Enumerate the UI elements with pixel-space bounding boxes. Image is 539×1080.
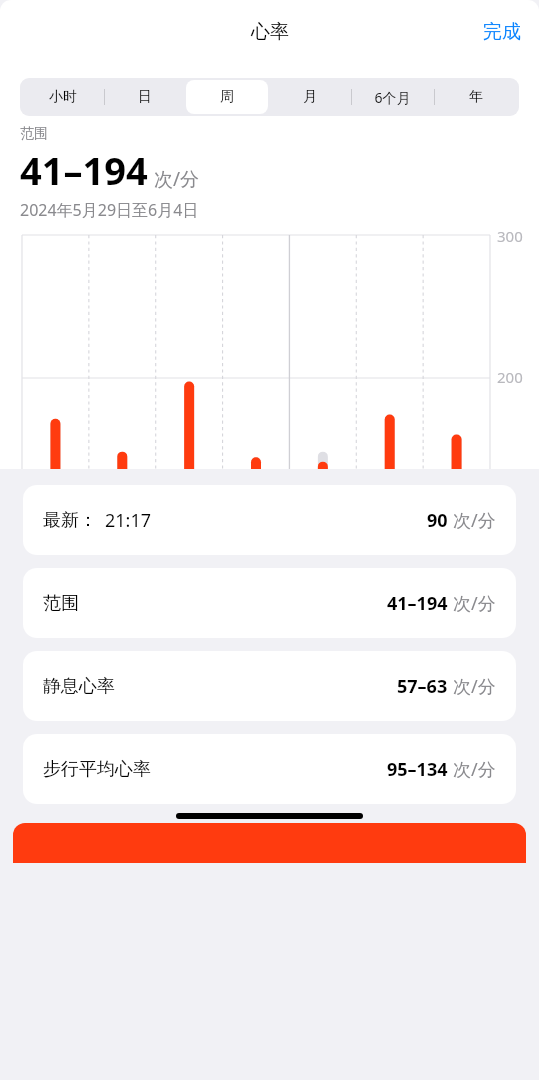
staticText: 静息心率 [43,675,115,698]
staticText: 100 [497,508,523,528]
button[interactable]: 6个月 [351,80,434,114]
staticText: 周二 [442,669,472,688]
staticText: 90 [427,508,448,533]
staticText: 300 [497,226,523,246]
button[interactable]: 范围 [23,568,516,638]
staticText: 小时 [49,88,77,106]
staticText: 次/分 [453,757,496,782]
button[interactable]: 月 [268,80,351,114]
staticText: 次/分 [453,674,496,699]
staticText: 范围 [20,125,48,143]
staticText: 200 [497,367,523,387]
button[interactable]: 年 [434,80,517,114]
staticText: 21:17 [105,508,152,533]
staticText: 年 [469,88,483,106]
button[interactable]: 小时 [22,80,104,114]
button[interactable]: 日 [104,80,186,114]
staticText: 日 [138,88,152,106]
staticText: 心率 [251,20,289,44]
button[interactable]: 完成 [465,10,539,54]
staticText: 周四 [107,669,137,688]
staticText: 月 [303,88,317,106]
staticText: 次/分 [154,166,200,192]
staticText: 2024年5月29日至6月4日 [20,199,199,221]
staticText: 41–194 [387,591,448,616]
staticText: 次/分 [453,591,496,616]
staticText: 57–63 [397,674,448,699]
staticText: 6个月 [374,88,411,107]
staticText: 周 [220,88,234,106]
staticText: 周一 [375,669,405,688]
staticText: 0 [497,649,506,669]
staticText: 周三 [40,669,70,688]
staticText: 范围 [43,592,79,615]
staticText: 41–194 [20,144,148,196]
button[interactable]: 周 [186,80,268,114]
staticText: 完成 [483,20,521,44]
button[interactable]: 最新： [23,485,516,555]
staticText: 95–134 [387,757,448,782]
staticText: 最新： [43,509,97,532]
staticText: 次/分 [453,508,496,533]
staticText: 步行平均心率 [43,758,151,781]
button[interactable]: 静息心率 [23,651,516,721]
button[interactable]: 步行平均心率 [23,734,516,804]
